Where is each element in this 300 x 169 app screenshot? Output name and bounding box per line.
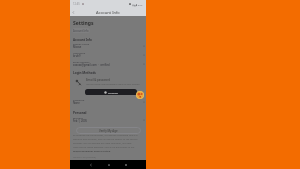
staticText: Login Methods	[73, 71, 96, 75]
button[interactable]: Account Info	[72, 28, 90, 33]
staticText: Settings	[73, 20, 94, 27]
staticText: Username	[73, 51, 86, 54]
button[interactable]: Password	[73, 98, 144, 106]
button[interactable]: Recent apps	[122, 161, 129, 168]
staticText: Display Name	[73, 42, 90, 45]
button[interactable]: Email & password	[73, 77, 143, 88]
staticText: Mobile Developer Privacy Notice.	[73, 150, 111, 153]
staticText: 12:45	[73, 2, 80, 6]
button[interactable]: Birthday	[73, 116, 144, 124]
staticText: Email & password	[86, 78, 111, 82]
button[interactable]: Verify My Age	[76, 127, 141, 134]
button[interactable]: Pending	[85, 89, 137, 95]
staticText: xxxxxx@gmail.com · verified	[73, 63, 110, 67]
button[interactable]: Home	[105, 161, 112, 168]
staticText: By entering the full birthday, you will …	[73, 134, 138, 137]
staticText: None	[73, 101, 80, 105]
staticText: identical and accurate, and you will be …	[73, 138, 138, 141]
staticText: Account Info	[73, 38, 92, 42]
staticText: provider. You can prevent any data colle…	[73, 142, 132, 145]
staticText: Account Info	[73, 29, 89, 33]
staticText: data may be made available. Check our da…	[73, 146, 136, 149]
staticText: ◍▲▮ 82%	[132, 3, 143, 6]
button[interactable]: Email Address	[73, 60, 144, 68]
staticText: Verify My Age	[99, 129, 118, 133]
staticText: Email Address	[73, 60, 90, 63]
staticText: Use your email and password to log in to…	[86, 83, 140, 86]
staticText: Account Info	[96, 10, 120, 15]
button[interactable]: Back	[70, 9, 77, 16]
button[interactable]: Display Name	[73, 42, 144, 50]
staticText: Moose	[73, 45, 82, 49]
staticText: Personal	[73, 111, 87, 115]
staticText: Feb 1, 2005	[73, 119, 87, 123]
staticText: bruh9	[73, 54, 81, 58]
button[interactable]: Back	[87, 161, 94, 168]
staticText: Birthday	[73, 116, 83, 119]
staticText: Version 1.28 (Android)	[73, 156, 96, 159]
button[interactable]: Username	[73, 51, 144, 59]
staticText: Pending	[108, 91, 118, 94]
staticText: Password	[73, 98, 85, 101]
